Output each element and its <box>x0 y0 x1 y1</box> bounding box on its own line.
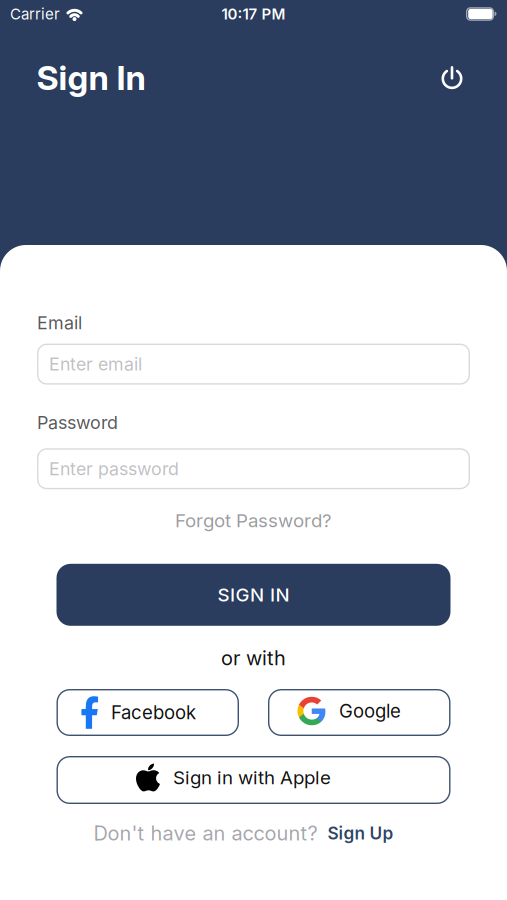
button[interactable]: Google <box>268 689 450 736</box>
staticText: Google <box>339 700 401 722</box>
button[interactable]: SIGN IN <box>56 564 450 626</box>
staticText: Facebook <box>111 701 196 724</box>
staticText: Email <box>37 312 82 334</box>
staticText: Sign In <box>36 57 145 98</box>
staticText: 10:17 PM <box>221 5 285 23</box>
button[interactable]: Log out <box>435 60 469 95</box>
button[interactable]: Sign in with Apple <box>56 756 450 804</box>
staticText: SIGN IN <box>217 583 289 606</box>
staticText: Enter password <box>49 458 179 479</box>
button[interactable]: Email, text field <box>37 344 470 385</box>
button[interactable]: Forgot Password? <box>167 509 340 532</box>
button[interactable]: Facebook <box>56 689 239 736</box>
staticText: Sign in with Apple <box>173 766 331 789</box>
staticText: Carrier <box>10 5 60 23</box>
staticText: Forgot Password? <box>175 509 332 532</box>
staticText: Sign Up <box>327 823 393 843</box>
button[interactable]: Password, text field <box>37 448 470 489</box>
button[interactable]: Sign Up <box>327 823 393 843</box>
staticText: or with <box>221 646 286 670</box>
staticText: Enter email <box>49 353 142 375</box>
staticText: Don't have an account? <box>93 821 317 845</box>
staticText: Password <box>37 412 118 433</box>
